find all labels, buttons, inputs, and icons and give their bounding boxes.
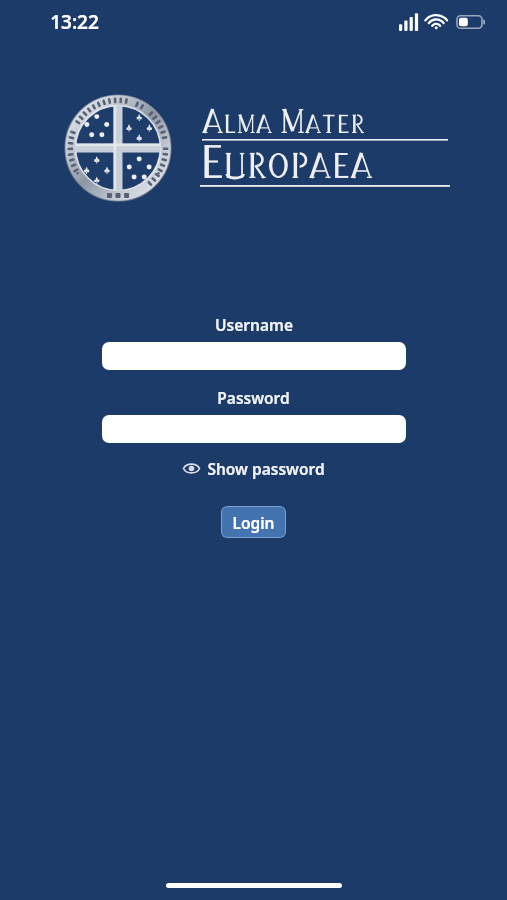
staticText: Username	[215, 314, 293, 335]
button[interactable]: Show password	[178, 456, 329, 481]
staticText: 13:22	[50, 9, 99, 35]
staticText: Password	[217, 387, 290, 408]
button[interactable]: Login	[221, 506, 286, 538]
button[interactable]	[102, 415, 406, 443]
button[interactable]	[102, 342, 406, 370]
staticText: Show password	[207, 458, 325, 479]
staticText: Login	[232, 512, 275, 533]
